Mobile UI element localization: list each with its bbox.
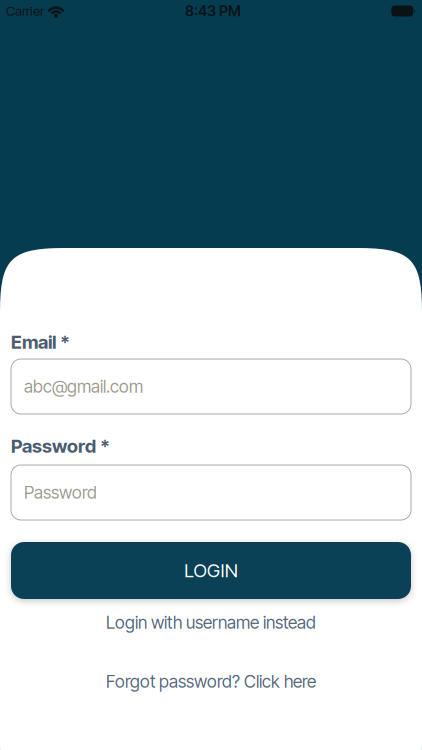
staticText: Carrier xyxy=(6,3,44,19)
button[interactable]: LOGIN xyxy=(11,542,411,599)
button[interactable]: Login with username instead xyxy=(106,612,316,633)
button[interactable]: Forgot password? Click here xyxy=(106,671,316,692)
textField[interactable]: abc@gmail.com xyxy=(24,376,411,397)
staticText: Password * xyxy=(11,435,110,457)
textField[interactable]: Password xyxy=(24,482,411,503)
staticText: LOGIN xyxy=(184,559,238,582)
staticText: Email * xyxy=(11,331,70,353)
staticText: abc@gmail.com xyxy=(24,376,143,397)
staticText: 8:43 PM xyxy=(185,2,241,20)
staticText: Password xyxy=(24,482,97,503)
staticText: Forgot password? Click here xyxy=(106,671,316,692)
staticText: Login with username instead xyxy=(106,612,316,633)
